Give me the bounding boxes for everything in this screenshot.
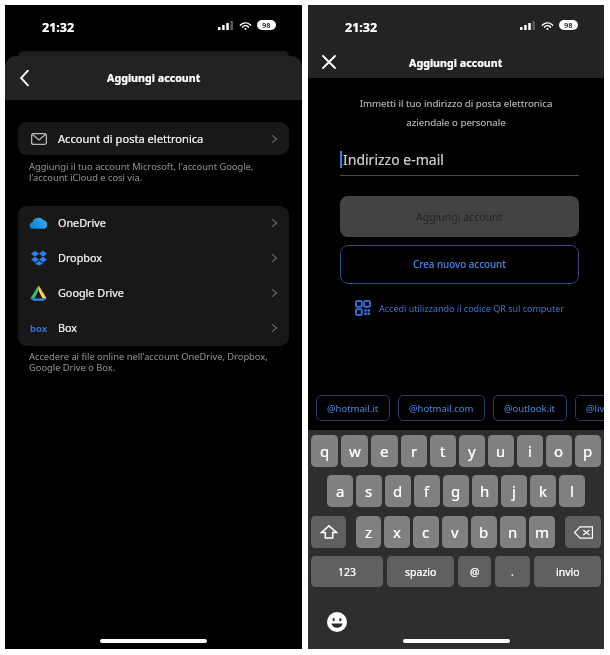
button[interactable]: e bbox=[371, 435, 398, 467]
staticText: spazio bbox=[405, 565, 437, 579]
staticText: @hotmail.it bbox=[327, 402, 379, 415]
staticText: m bbox=[535, 522, 550, 542]
staticText: g bbox=[451, 481, 461, 501]
staticText: q bbox=[320, 441, 330, 461]
button[interactable]: d bbox=[385, 475, 411, 507]
button[interactable]: . bbox=[495, 556, 530, 587]
staticText: s bbox=[365, 481, 373, 501]
button[interactable]: box bbox=[18, 311, 289, 346]
staticText: Accedi utilizzando il codice QR sul comp… bbox=[379, 302, 564, 314]
button[interactable]: g bbox=[443, 475, 469, 507]
staticText: b bbox=[479, 522, 489, 542]
button[interactable]: Chiudi bbox=[314, 47, 344, 77]
staticText: 21:32 bbox=[42, 19, 75, 36]
staticText: @outlook.it bbox=[504, 402, 556, 415]
staticText: 98 bbox=[262, 20, 271, 30]
staticText: p bbox=[583, 441, 593, 461]
button[interactable]: OneDrive bbox=[18, 206, 289, 241]
button[interactable]: k bbox=[530, 475, 556, 507]
staticText: Dropbox bbox=[58, 250, 102, 265]
button[interactable]: c bbox=[413, 516, 439, 548]
staticText: Immetti il tuo indirizzo di posta elettr… bbox=[322, 97, 590, 128]
button[interactable]: b bbox=[471, 516, 497, 548]
staticText: @ bbox=[470, 565, 480, 579]
staticText: Aggiungi account bbox=[409, 56, 503, 71]
button[interactable]: @live.it bbox=[575, 395, 604, 421]
button[interactable]: Emoji bbox=[327, 612, 347, 632]
button[interactable]: t bbox=[430, 435, 456, 467]
staticText: Account di posta elettronica bbox=[58, 131, 204, 146]
staticText: d bbox=[393, 481, 403, 501]
button[interactable]: m bbox=[529, 516, 555, 548]
staticText: Crea nuovo account bbox=[413, 258, 506, 271]
staticText: Aggiungi account bbox=[107, 71, 201, 86]
staticText: Indirizzo e-mail bbox=[343, 150, 444, 169]
button[interactable]: s bbox=[356, 475, 382, 507]
staticText: Box bbox=[58, 320, 78, 335]
staticText: c bbox=[422, 522, 430, 542]
button[interactable]: 123 bbox=[311, 556, 383, 587]
staticText: 21:32 bbox=[345, 19, 378, 36]
button[interactable]: Aggiungi account bbox=[340, 196, 579, 237]
staticText: u bbox=[496, 441, 506, 461]
button[interactable]: @hotmail.it bbox=[316, 395, 390, 421]
button[interactable]: x bbox=[384, 516, 410, 548]
staticText: l bbox=[570, 481, 574, 501]
button[interactable]: Crea nuovo account bbox=[340, 245, 579, 284]
button[interactable]: v bbox=[442, 516, 468, 548]
button[interactable]: q bbox=[311, 435, 338, 467]
staticText: e bbox=[380, 441, 389, 461]
staticText: Accedere ai file online nell'account One… bbox=[29, 350, 268, 374]
button[interactable]: a bbox=[327, 475, 353, 507]
staticText: . bbox=[511, 565, 514, 579]
button[interactable]: w bbox=[341, 435, 368, 467]
staticText: z bbox=[365, 522, 373, 542]
button[interactable]: y bbox=[459, 435, 485, 467]
staticText: Aggiungi account bbox=[416, 210, 503, 224]
button[interactable]: i bbox=[517, 435, 543, 467]
staticText: x bbox=[393, 522, 401, 542]
button[interactable]: invio bbox=[534, 556, 601, 587]
button[interactable]: f bbox=[414, 475, 440, 507]
button[interactable]: Google Drive bbox=[18, 276, 289, 311]
staticText: Google Drive bbox=[58, 285, 124, 300]
staticText: k bbox=[539, 481, 548, 501]
button[interactable]: z bbox=[356, 516, 381, 548]
staticText: @live.it bbox=[586, 402, 604, 415]
button[interactable]: Indirizzo e-mail bbox=[340, 146, 579, 172]
button[interactable]: n bbox=[500, 516, 526, 548]
button[interactable]: spazio bbox=[387, 556, 454, 587]
button[interactable]: Account di posta elettronica bbox=[18, 122, 289, 155]
button[interactable]: u bbox=[488, 435, 514, 467]
button[interactable]: Cancella bbox=[565, 516, 601, 548]
staticText: w bbox=[349, 441, 361, 461]
staticText: r bbox=[411, 441, 418, 461]
button[interactable]: h bbox=[472, 475, 498, 507]
staticText: h bbox=[480, 481, 490, 501]
staticText: j bbox=[512, 481, 516, 501]
button[interactable]: Dropbox bbox=[18, 241, 289, 276]
button[interactable]: p bbox=[575, 435, 601, 467]
button[interactable]: j bbox=[501, 475, 527, 507]
staticText: o bbox=[554, 441, 564, 461]
button[interactable]: o bbox=[546, 435, 572, 467]
button[interactable]: Indietro bbox=[6, 60, 42, 96]
staticText: t bbox=[440, 441, 446, 461]
button[interactable]: Accedi utilizzando il codice QR sul comp… bbox=[340, 301, 579, 315]
staticText: box bbox=[30, 322, 48, 334]
staticText: n bbox=[508, 522, 518, 542]
staticText: i bbox=[528, 441, 532, 461]
staticText: Aggiungi il tuo account Microsoft, l'acc… bbox=[29, 160, 254, 184]
button[interactable]: l bbox=[559, 475, 585, 507]
staticText: a bbox=[336, 481, 345, 501]
staticText: @hotmail.com bbox=[409, 402, 474, 415]
button[interactable]: Maiuscole bbox=[311, 516, 346, 548]
button[interactable]: @hotmail.com bbox=[398, 395, 485, 421]
button[interactable]: r bbox=[401, 435, 427, 467]
staticText: 98 bbox=[564, 20, 573, 30]
button[interactable]: @outlook.it bbox=[493, 395, 567, 421]
staticText: invio bbox=[556, 565, 580, 579]
button[interactable]: @ bbox=[458, 556, 491, 587]
staticText: y bbox=[468, 441, 476, 461]
staticText: OneDrive bbox=[58, 215, 106, 230]
